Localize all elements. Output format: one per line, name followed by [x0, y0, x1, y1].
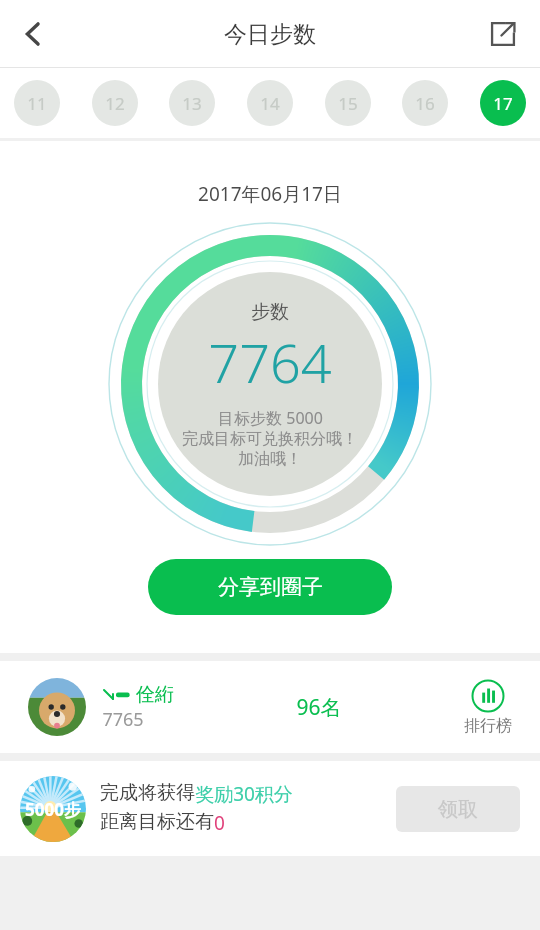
staticText: 14	[260, 92, 280, 115]
staticText: 13	[182, 92, 202, 115]
button[interactable]: 14	[247, 80, 293, 126]
button[interactable]: 13	[169, 80, 215, 126]
staticText: 分享到圈子	[218, 574, 323, 600]
staticText: 5000步	[25, 798, 81, 821]
staticText: 11	[27, 92, 47, 115]
staticText: 完成将获得	[100, 781, 195, 805]
staticText: 领取	[438, 797, 478, 822]
button[interactable]: 17	[480, 80, 526, 126]
staticText: 佺絎	[136, 683, 174, 707]
button[interactable]: Share	[478, 9, 528, 59]
staticText: 96名	[296, 693, 342, 722]
button[interactable]: 12	[92, 80, 138, 126]
staticText: 排行榜	[464, 716, 512, 736]
staticText: 7764	[208, 325, 332, 399]
staticText: 目标步数 5000	[218, 407, 323, 429]
button[interactable]: 排行榜	[464, 679, 512, 736]
staticText: 今日步数	[224, 20, 316, 49]
staticText: 加油哦！	[238, 449, 302, 469]
button[interactable]: 11	[14, 80, 60, 126]
button[interactable]: 佺絎	[0, 661, 540, 753]
button[interactable]: 领取	[396, 786, 520, 832]
button[interactable]: 15	[325, 80, 371, 126]
button[interactable]: 16	[402, 80, 448, 126]
staticText: 2017年06月17日	[198, 181, 342, 207]
staticText: 距离目标还有	[100, 810, 214, 834]
staticText: 12	[105, 92, 125, 115]
staticText: 15	[338, 92, 358, 115]
staticText: 17	[493, 92, 513, 115]
staticText: 7765	[102, 707, 144, 732]
staticText: 完成目标可兑换积分哦！	[182, 429, 358, 449]
button[interactable]: 分享到圈子	[148, 559, 392, 615]
staticText: 16	[415, 92, 435, 115]
staticText: 步数	[251, 300, 289, 324]
button[interactable]: Back	[6, 7, 60, 61]
staticText: 0	[214, 810, 225, 836]
staticText: 奖励30积分	[195, 781, 293, 807]
